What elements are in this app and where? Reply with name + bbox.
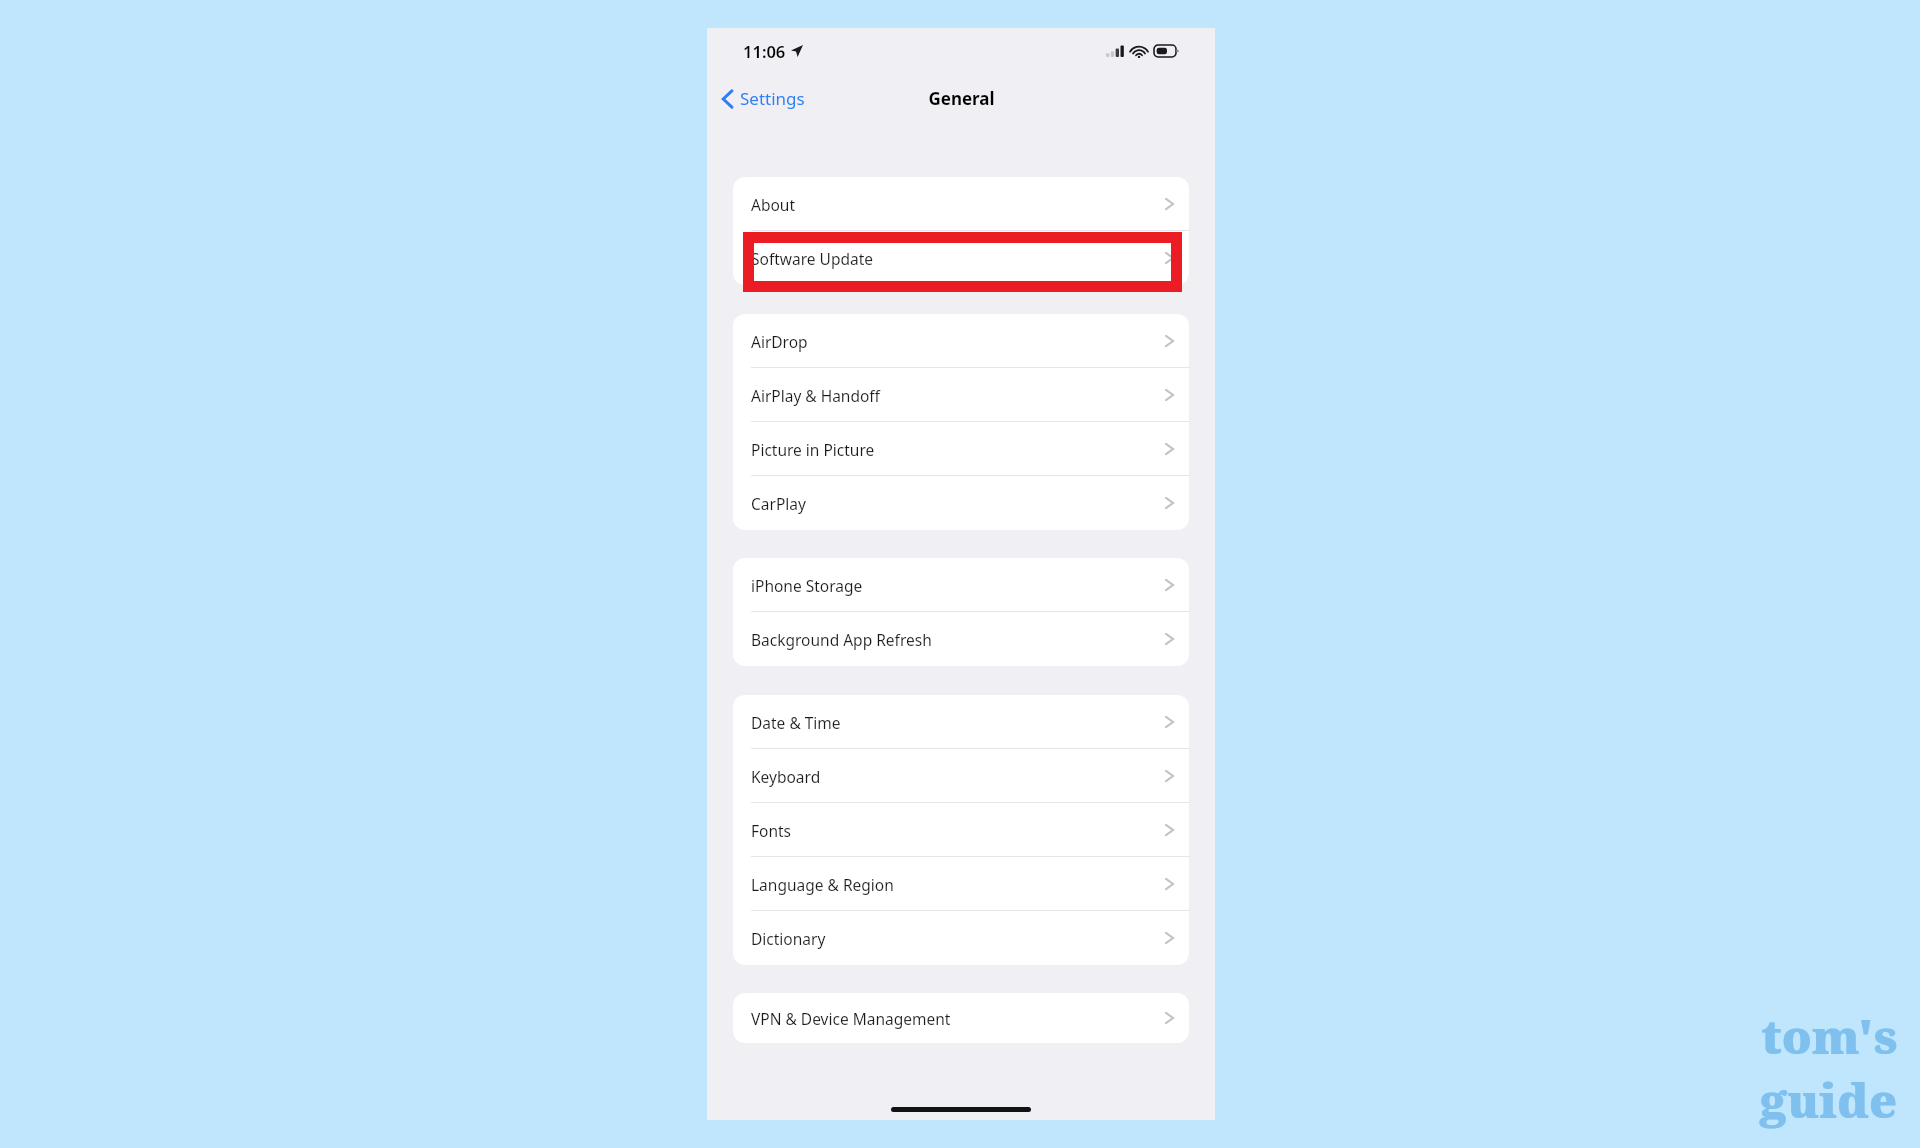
button[interactable]: VPN & Device Management	[733, 993, 1189, 1043]
button[interactable]: CarPlay	[733, 476, 1189, 530]
staticText: About	[751, 194, 795, 215]
staticText: Keyboard	[751, 766, 821, 787]
staticText: Language & Region	[751, 874, 894, 895]
button[interactable]: Settings	[721, 87, 805, 110]
button[interactable]: Background App Refresh	[733, 612, 1189, 666]
button[interactable]: Software Update	[733, 231, 1189, 285]
button[interactable]: iPhone Storage	[733, 558, 1189, 612]
button[interactable]: AirDrop	[733, 314, 1189, 368]
staticText: Dictionary	[751, 928, 826, 949]
button[interactable]: Fonts	[733, 803, 1189, 857]
button[interactable]: Language & Region	[733, 857, 1189, 911]
button[interactable]: About	[733, 177, 1189, 231]
staticText: AirPlay & Handoff	[751, 385, 881, 406]
button[interactable]: Date & Time	[733, 695, 1189, 749]
staticText: General	[928, 87, 995, 110]
staticText: VPN & Device Management	[751, 1008, 951, 1029]
staticText: AirDrop	[751, 331, 808, 352]
staticText: Background App Refresh	[751, 629, 932, 650]
staticText: Picture in Picture	[751, 439, 875, 460]
button[interactable]: Keyboard	[733, 749, 1189, 803]
staticText: guide	[1760, 1068, 1898, 1132]
button[interactable]: Picture in Picture	[733, 422, 1189, 476]
staticText: CarPlay	[751, 493, 806, 514]
button[interactable]: AirPlay & Handoff	[733, 368, 1189, 422]
staticText: iPhone Storage	[751, 575, 863, 596]
staticText: tom's	[1761, 1004, 1898, 1068]
staticText: 11:06	[743, 40, 786, 62]
button[interactable]: Dictionary	[733, 911, 1189, 965]
staticText: Fonts	[751, 820, 792, 841]
staticText: Software Update	[751, 248, 873, 269]
staticText: Settings	[740, 87, 805, 110]
staticText: Date & Time	[751, 712, 841, 733]
